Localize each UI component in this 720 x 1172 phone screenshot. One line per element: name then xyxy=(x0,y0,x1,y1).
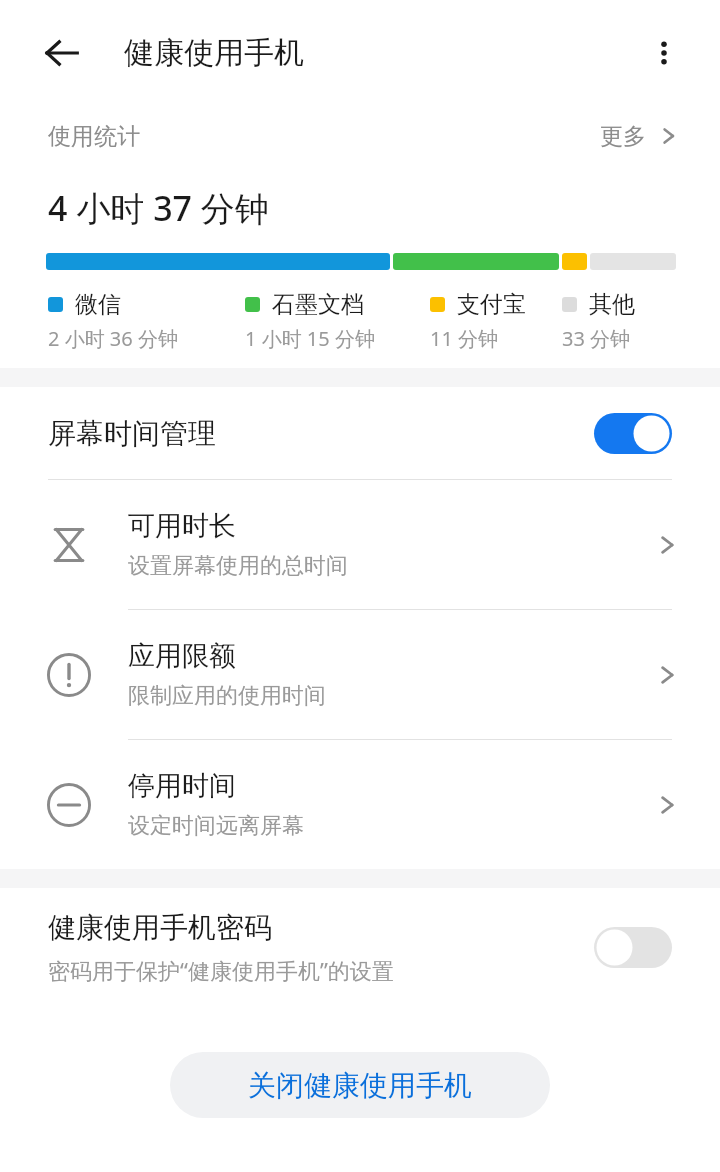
staticText: 健康使用手机 xyxy=(124,34,304,72)
button[interactable]: 屏幕时间管理 开关 xyxy=(594,413,672,454)
button[interactable]: 关闭健康使用手机 xyxy=(170,1052,550,1118)
button[interactable]: 健康使用手机密码 xyxy=(0,888,720,1006)
staticText: 更多 xyxy=(600,122,646,151)
staticText: 支付宝 xyxy=(457,290,526,319)
button[interactable]: 可用时长 xyxy=(0,480,720,610)
staticText: 11 分钟 xyxy=(430,325,499,352)
staticText: 限制应用的使用时间 xyxy=(128,682,326,710)
staticText: 4 小时 37 分钟 xyxy=(48,185,269,231)
staticText: 密码用于保护“健康使用手机”的设置 xyxy=(48,955,394,985)
button[interactable]: 应用限额 xyxy=(0,610,720,740)
button[interactable]: Back xyxy=(34,25,90,81)
staticText: 停用时间 xyxy=(128,769,236,803)
staticText: 应用限额 xyxy=(128,639,236,673)
staticText: 其他 xyxy=(589,290,635,319)
staticText: 健康使用手机密码 xyxy=(48,910,272,945)
button[interactable]: 屏幕时间管理 xyxy=(0,387,720,479)
staticText: 设定时间远离屏幕 xyxy=(128,812,304,840)
staticText: 1 小时 15 分钟 xyxy=(245,325,375,352)
staticText: 关闭健康使用手机 xyxy=(248,1068,472,1103)
button[interactable]: 使用统计 xyxy=(0,105,720,167)
staticText: 使用统计 xyxy=(48,122,140,151)
staticText: 2 小时 36 分钟 xyxy=(48,325,178,352)
staticText: 设置屏幕使用的总时间 xyxy=(128,552,348,580)
staticText: 屏幕时间管理 xyxy=(48,416,216,451)
button[interactable]: More options xyxy=(636,25,692,81)
button[interactable]: 停用时间 xyxy=(0,740,720,869)
staticText: 微信 xyxy=(75,290,121,319)
button[interactable]: 健康使用手机密码 开关 xyxy=(594,927,672,968)
staticText: 33 分钟 xyxy=(562,325,631,352)
staticText: 石墨文档 xyxy=(272,290,364,319)
staticText: 可用时长 xyxy=(128,509,236,543)
